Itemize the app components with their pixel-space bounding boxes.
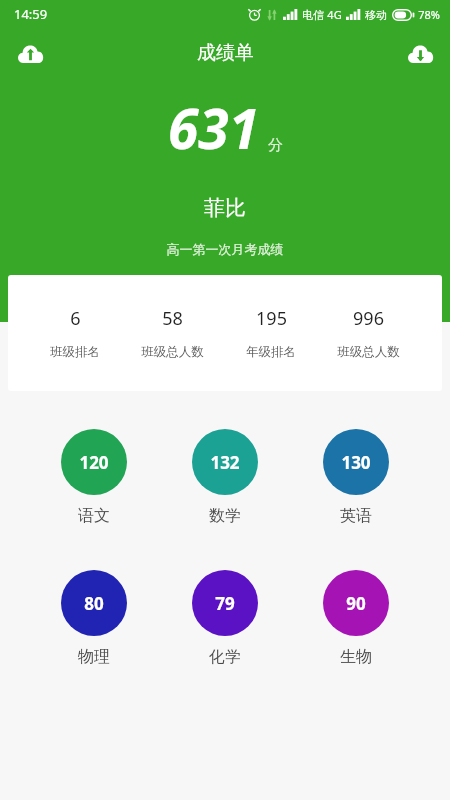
staticText: 成绩单 (197, 41, 254, 65)
staticText: 120 (79, 451, 109, 474)
staticText: 菲比 (0, 195, 450, 221)
staticText: 分 (268, 136, 283, 155)
button[interactable]: 79 (188, 566, 262, 671)
staticText: 数学 (209, 506, 241, 526)
staticText: 4G (327, 7, 342, 22)
button[interactable]: 80 (57, 566, 131, 671)
staticText: 年级排名 (246, 344, 296, 360)
staticText: 14:59 (14, 5, 48, 23)
staticText: 生物 (340, 647, 372, 667)
button[interactable]: 132 (188, 425, 262, 530)
staticText: 英语 (340, 506, 372, 526)
button[interactable]: Upload (8, 31, 52, 75)
staticText: 79 (215, 592, 235, 615)
staticText: 班级排名 (50, 344, 100, 360)
staticText: 130 (341, 451, 371, 474)
staticText: 化学 (209, 647, 241, 667)
staticText: 631 (168, 90, 259, 165)
staticText: 58 (162, 306, 183, 331)
staticText: 物理 (78, 647, 110, 667)
button[interactable]: Download (398, 31, 442, 75)
button[interactable]: 6 (8, 275, 442, 391)
staticText: 195 (256, 306, 287, 331)
button[interactable]: 90 (319, 566, 393, 671)
staticText: 78% (418, 7, 440, 22)
staticText: 班级总人数 (337, 344, 400, 360)
staticText: 6 (70, 306, 81, 331)
staticText: 电信 (302, 8, 324, 22)
staticText: 80 (84, 592, 104, 615)
staticText: 132 (210, 451, 240, 474)
button[interactable]: 130 (319, 425, 393, 530)
staticText: 移动 (365, 8, 387, 22)
staticText: 996 (353, 306, 384, 331)
staticText: 班级总人数 (141, 344, 204, 360)
staticText: 语文 (78, 506, 110, 526)
staticText: 90 (346, 592, 366, 615)
button[interactable]: 120 (57, 425, 131, 530)
staticText: 高一第一次月考成绩 (0, 241, 450, 257)
